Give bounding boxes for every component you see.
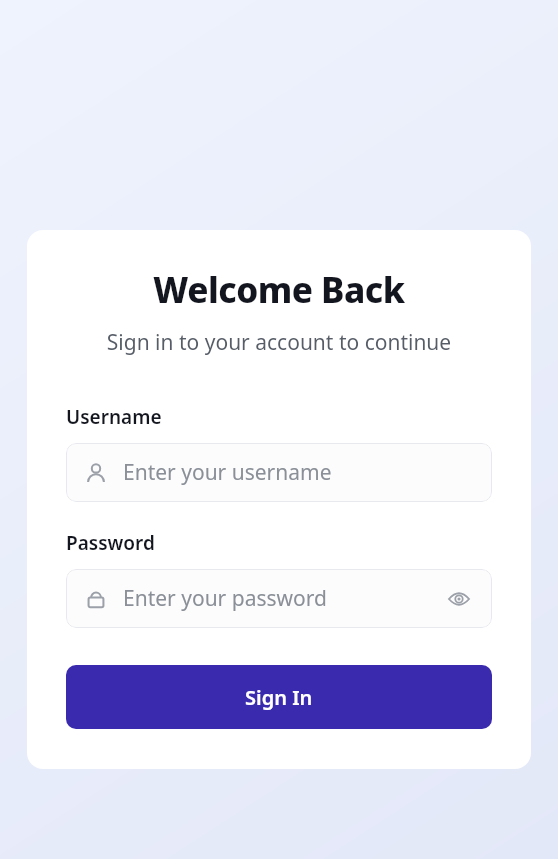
staticText: Enter your password [123, 584, 327, 613]
staticText: Username [66, 404, 162, 430]
staticText: Sign In [245, 684, 313, 711]
button[interactable]: Enter your username [66, 443, 492, 502]
button[interactable]: Sign In [66, 665, 492, 729]
staticText: Enter your username [123, 458, 332, 487]
button[interactable]: Enter your password [66, 569, 492, 628]
button[interactable]: Show password [444, 584, 474, 614]
staticText: Sign in to your account to continue [66, 328, 492, 357]
staticText: Password [66, 530, 155, 556]
staticText: Welcome Back [66, 266, 492, 314]
